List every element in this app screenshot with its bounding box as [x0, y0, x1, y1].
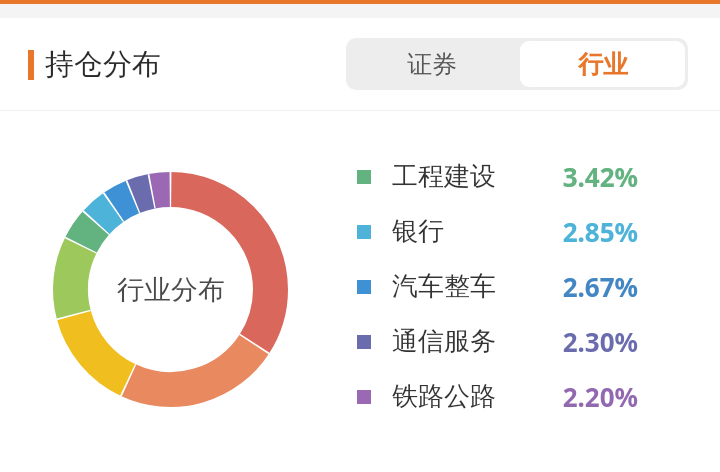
- staticText: 2.85%: [562, 214, 638, 249]
- staticText: 3.42%: [562, 159, 638, 194]
- button[interactable]: 通信服务: [350, 314, 688, 369]
- staticText: 通信服务: [392, 325, 496, 358]
- button[interactable]: 行业: [520, 41, 685, 87]
- staticText: 2.67%: [562, 269, 638, 304]
- staticText: 铁路公路: [392, 380, 496, 413]
- button[interactable]: 工程建设: [350, 149, 688, 204]
- button[interactable]: 证券: [346, 38, 517, 90]
- staticText: 行业: [578, 49, 628, 80]
- staticText: 银行: [392, 215, 444, 248]
- staticText: 2.20%: [562, 379, 638, 414]
- staticText: 行业分布: [117, 273, 225, 307]
- staticText: 2.30%: [562, 324, 638, 359]
- staticText: 证券: [407, 49, 457, 80]
- staticText: 汽车整车: [392, 270, 496, 303]
- button[interactable]: 汽车整车: [350, 259, 688, 314]
- staticText: 工程建设: [392, 160, 496, 193]
- staticText: 持仓分布: [45, 46, 161, 83]
- button[interactable]: 铁路公路: [350, 369, 688, 424]
- button[interactable]: 银行: [350, 204, 688, 259]
